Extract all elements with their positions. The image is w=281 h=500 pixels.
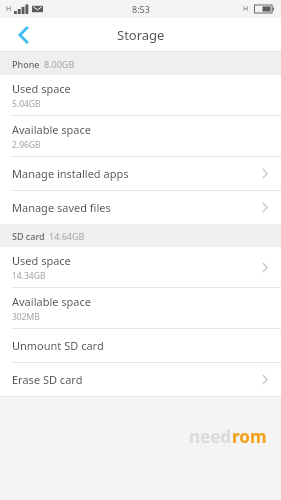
button[interactable]: Back: [0, 18, 46, 52]
button[interactable]: Used space: [0, 247, 281, 287]
button[interactable]: Erase SD card: [0, 363, 281, 396]
staticText: 2.96GB: [12, 139, 41, 151]
button[interactable]: Manage saved files: [0, 191, 281, 224]
button[interactable]: Available space: [0, 116, 281, 156]
staticText: 8.00GB: [44, 58, 75, 70]
button[interactable]: Unmount SD card: [0, 329, 281, 362]
staticText: Used space: [12, 253, 71, 268]
staticText: Available space: [12, 294, 91, 309]
staticText: 14.34GB: [12, 270, 46, 282]
button[interactable]: Manage installed apps: [0, 157, 281, 190]
staticText: Manage saved files: [12, 200, 111, 215]
staticText: need: [189, 425, 232, 448]
staticText: Storage: [117, 26, 165, 44]
staticText: rom: [232, 425, 267, 448]
staticText: H: [243, 4, 249, 14]
staticText: 14.64GB: [49, 230, 85, 242]
staticText: H: [6, 4, 12, 14]
staticText: 302MB: [12, 311, 40, 323]
staticText: Unmount SD card: [12, 338, 104, 353]
staticText: SD card: [12, 230, 45, 242]
staticText: Available space: [12, 122, 91, 137]
staticText: Erase SD card: [12, 372, 83, 387]
staticText: Used space: [12, 81, 71, 96]
staticText: Manage installed apps: [12, 166, 129, 181]
staticText: 5.04GB: [12, 98, 41, 110]
button[interactable]: Used space: [0, 75, 281, 115]
button[interactable]: Available space: [0, 288, 281, 328]
staticText: 8:53: [132, 3, 150, 15]
staticText: Phone: [12, 58, 40, 70]
